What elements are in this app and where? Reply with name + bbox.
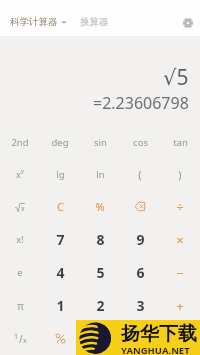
button[interactable]: 0 <box>80 322 120 355</box>
button[interactable]: ) <box>160 158 200 190</box>
button[interactable]: deg <box>40 126 80 158</box>
button[interactable]: × <box>160 223 200 256</box>
button[interactable]: 5 <box>80 256 120 289</box>
staticText: YANGHUA.NET <box>121 344 190 355</box>
staticText: 2nd <box>11 136 29 149</box>
staticText: − <box>176 264 184 282</box>
button[interactable]: 科学计算器 <box>0 8 69 36</box>
staticText: π <box>17 299 24 313</box>
staticText: 0 <box>96 329 105 348</box>
button[interactable]: % <box>80 190 120 223</box>
staticText: 3 <box>136 296 145 315</box>
button[interactable]: + <box>160 289 200 322</box>
staticText: tan <box>173 136 188 149</box>
button[interactable]: lg <box>40 158 80 190</box>
button[interactable] <box>40 322 80 355</box>
staticText: deg <box>51 136 69 149</box>
button[interactable]: x! <box>0 223 40 256</box>
button[interactable]: 4 <box>40 256 80 289</box>
staticText: ÷ <box>176 198 184 216</box>
button[interactable]: 1 <box>0 322 40 355</box>
staticText: 科学计算器 <box>10 16 58 28</box>
staticText: x! <box>16 233 24 246</box>
staticText: ln <box>96 168 105 181</box>
staticText: y <box>21 167 25 175</box>
staticText: 4 <box>56 263 65 282</box>
button[interactable] <box>120 190 160 223</box>
button[interactable]: − <box>160 256 200 289</box>
staticText: lg <box>56 168 65 181</box>
button[interactable]: 1 <box>40 289 80 322</box>
staticText: 6 <box>136 263 145 282</box>
button[interactable]: 3 <box>120 289 160 322</box>
button[interactable]: 7 <box>40 223 80 256</box>
button[interactable]: 6 <box>120 256 160 289</box>
staticText: cos <box>133 136 148 149</box>
staticText: =2.23606798 <box>93 92 189 114</box>
button[interactable]: x <box>0 158 40 190</box>
staticText: % <box>95 199 105 214</box>
button[interactable]: x <box>0 190 40 223</box>
button[interactable]: e <box>0 256 40 289</box>
staticText: / <box>19 332 23 346</box>
button[interactable]: π <box>0 289 40 322</box>
staticText: 换算器 <box>80 16 109 28</box>
staticText: ( <box>138 167 142 182</box>
button[interactable]: 8 <box>80 223 120 256</box>
button[interactable]: tan <box>160 126 200 158</box>
staticText: x <box>21 204 25 214</box>
staticText: 扬华下载 <box>121 322 197 346</box>
staticText: x <box>16 168 21 180</box>
staticText: 1 <box>14 332 19 342</box>
staticText: e <box>17 266 23 279</box>
staticText: 2 <box>96 296 105 315</box>
staticText: . <box>138 329 142 348</box>
button[interactable]: 9 <box>120 223 160 256</box>
staticText: = <box>176 330 184 348</box>
button[interactable]: cos <box>120 126 160 158</box>
button[interactable]: = <box>160 322 200 355</box>
button[interactable]: ( <box>120 158 160 190</box>
staticText: ) <box>178 167 182 182</box>
button[interactable]: 2nd <box>0 126 40 158</box>
staticText: × <box>176 231 184 249</box>
staticText: 9 <box>136 230 145 249</box>
button[interactable]: sin <box>80 126 120 158</box>
staticText: 5 <box>96 263 105 282</box>
staticText: C <box>57 199 64 214</box>
staticText: x <box>23 336 27 346</box>
staticText: + <box>176 297 184 315</box>
button[interactable]: 2 <box>80 289 120 322</box>
button[interactable]: ln <box>80 158 120 190</box>
button[interactable]: Settings <box>174 8 200 36</box>
button[interactable]: . <box>120 322 160 355</box>
staticText: 7 <box>56 230 65 249</box>
staticText: sin <box>94 136 107 149</box>
staticText: √5 <box>163 63 189 92</box>
button[interactable]: C <box>40 190 80 223</box>
staticText: 8 <box>96 230 105 249</box>
button[interactable]: ÷ <box>160 190 200 223</box>
button[interactable]: 换算器 <box>69 8 118 36</box>
staticText: 1 <box>56 296 65 315</box>
